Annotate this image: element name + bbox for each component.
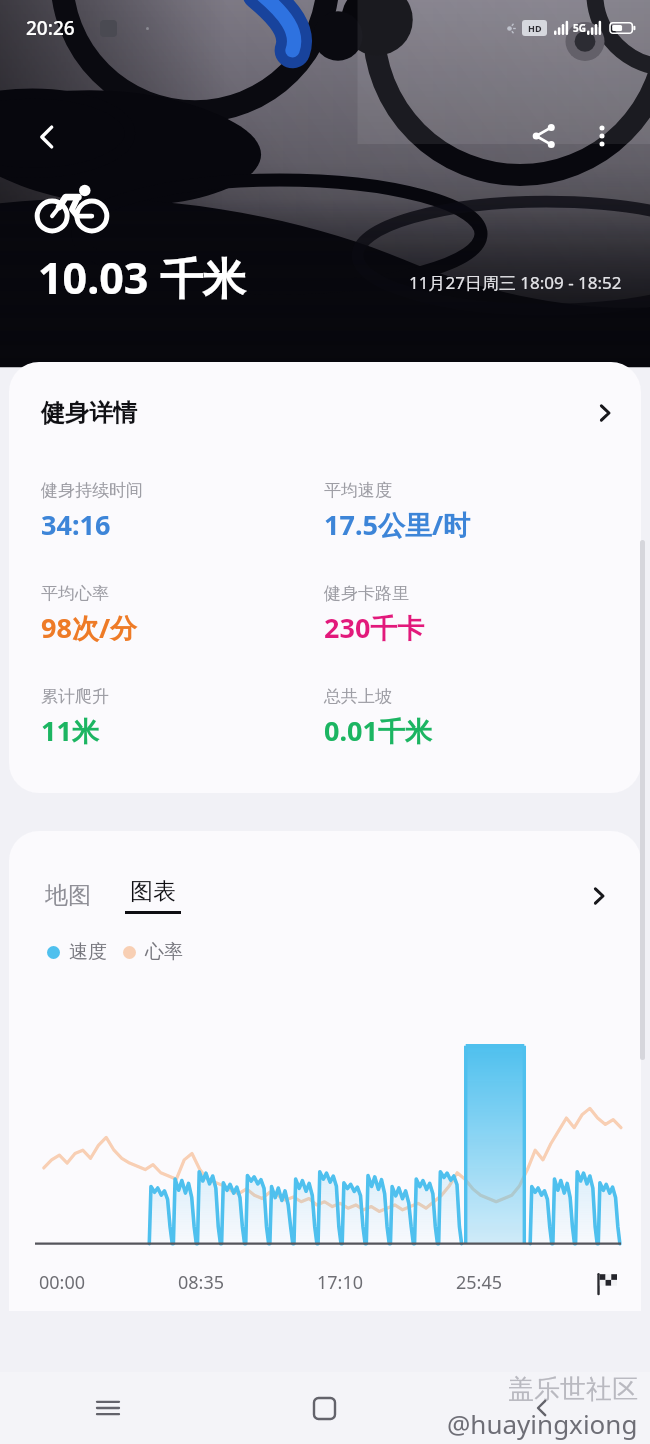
- staticText: 34:16: [41, 506, 111, 543]
- staticText: HD: [528, 22, 542, 34]
- staticText: 地图: [45, 881, 91, 910]
- staticText: 25:45: [456, 1270, 595, 1295]
- button[interactable]: 地图: [39, 877, 97, 914]
- button[interactable]: Open chart: [583, 880, 615, 912]
- staticText: 08:35: [178, 1270, 317, 1295]
- staticText: 总共上坡: [324, 686, 392, 707]
- button[interactable]: 健身详情: [9, 362, 641, 438]
- staticText: 98次/分: [41, 609, 138, 646]
- staticText: 11米: [41, 712, 99, 749]
- staticText: 17:10: [317, 1270, 456, 1295]
- staticText: 平均速度: [324, 480, 392, 501]
- button[interactable]: Home: [216, 1372, 433, 1444]
- staticText: @huayingxiong: [447, 1406, 638, 1441]
- staticText: 健身卡路里: [324, 583, 409, 604]
- staticText: 5G: [573, 21, 586, 35]
- staticText: 11月27日周三 18:09 - 18:52: [409, 271, 622, 294]
- staticText: 00:00: [39, 1270, 178, 1295]
- staticText: 0.01千米: [324, 712, 432, 749]
- button[interactable]: Back: [18, 108, 76, 166]
- staticText: 盖乐世社区: [508, 1373, 638, 1406]
- button[interactable]: More options: [574, 108, 630, 164]
- button[interactable]: Share: [516, 108, 572, 164]
- staticText: 17.5公里/时: [324, 506, 471, 543]
- staticText: 230千卡: [324, 609, 425, 646]
- button[interactable]: 图表: [121, 873, 185, 918]
- button[interactable]: Back: [433, 1372, 650, 1444]
- staticText: 图表: [130, 877, 176, 906]
- staticText: 平均心率: [41, 583, 109, 604]
- staticText: 20:26: [26, 15, 75, 41]
- staticText: 健身详情: [41, 398, 137, 428]
- staticText: 速度: [69, 940, 107, 964]
- staticText: 心率: [145, 940, 183, 964]
- staticText: 健身持续时间: [41, 480, 143, 501]
- staticText: 累计爬升: [41, 686, 109, 707]
- staticText: 10.03 千米: [38, 248, 246, 307]
- button[interactable]: Recents: [0, 1372, 216, 1444]
